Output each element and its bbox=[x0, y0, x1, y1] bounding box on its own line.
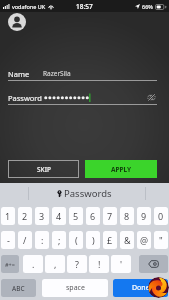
button[interactable]: ; bbox=[52, 231, 66, 249]
button[interactable]: 6 bbox=[86, 207, 100, 225]
staticText: 5 bbox=[73, 210, 79, 222]
button[interactable]: 1 bbox=[1, 207, 15, 225]
staticText: , bbox=[54, 258, 57, 270]
staticText: Name bbox=[8, 69, 30, 79]
staticText: vodafone UK bbox=[12, 3, 46, 10]
button[interactable]: ! bbox=[89, 255, 109, 273]
staticText: 66% bbox=[142, 3, 153, 10]
button[interactable]: 7 bbox=[103, 207, 117, 225]
staticText: SKIP bbox=[37, 165, 51, 174]
button[interactable]: & bbox=[120, 231, 134, 249]
staticText: Done bbox=[132, 283, 150, 293]
staticText: . bbox=[32, 258, 35, 270]
staticText: @ bbox=[140, 234, 149, 246]
staticText: APPLY bbox=[111, 165, 132, 174]
button[interactable]: 5 bbox=[69, 207, 83, 225]
button[interactable]: £ bbox=[103, 231, 117, 249]
staticText: RazerSila bbox=[43, 69, 71, 78]
staticText: 9 bbox=[141, 210, 147, 222]
button[interactable]: @ bbox=[137, 231, 151, 249]
staticText: ABC bbox=[12, 284, 25, 293]
button[interactable]: : bbox=[35, 231, 49, 249]
button[interactable]: Profile avatar bbox=[8, 13, 26, 31]
button[interactable]: APPLY bbox=[85, 160, 157, 178]
button[interactable]: ? bbox=[67, 255, 87, 273]
button[interactable]: Done bbox=[113, 279, 168, 297]
button[interactable]: Show password bbox=[146, 92, 157, 103]
staticText: - bbox=[7, 234, 10, 246]
staticText: ! bbox=[98, 258, 101, 270]
button[interactable]: Passwords bbox=[57, 187, 112, 200]
staticText: space bbox=[66, 283, 85, 293]
staticText: 6 bbox=[90, 210, 96, 222]
button[interactable]: - bbox=[1, 231, 15, 249]
staticText: : bbox=[41, 234, 44, 246]
button[interactable]: . bbox=[23, 255, 43, 273]
staticText: 4 bbox=[56, 210, 62, 222]
button[interactable]: " bbox=[154, 231, 168, 249]
button[interactable]: 2 bbox=[18, 207, 32, 225]
button[interactable]: SKIP bbox=[8, 160, 79, 178]
staticText: 0 bbox=[158, 210, 164, 222]
button[interactable]: 0 bbox=[154, 207, 168, 225]
staticText: 2 bbox=[22, 210, 28, 222]
button[interactable]: 4 bbox=[52, 207, 66, 225]
button[interactable]: / bbox=[18, 231, 32, 249]
staticText: " bbox=[159, 234, 163, 246]
staticText: ' bbox=[120, 258, 123, 270]
staticText: £ bbox=[107, 234, 113, 246]
button[interactable]: #+= bbox=[1, 255, 19, 273]
staticText: / bbox=[23, 234, 27, 246]
staticText: 18:57 bbox=[76, 2, 93, 11]
button[interactable]: ( bbox=[69, 231, 83, 249]
button[interactable]: space bbox=[42, 279, 108, 297]
button[interactable]: 3 bbox=[35, 207, 49, 225]
staticText: ? bbox=[75, 258, 79, 270]
button[interactable]: ) bbox=[86, 231, 100, 249]
button[interactable]: Backspace bbox=[139, 255, 168, 273]
staticText: Passwords bbox=[64, 187, 112, 200]
staticText: 3 bbox=[39, 210, 45, 222]
button[interactable]: , bbox=[45, 255, 65, 273]
button[interactable]: ABC bbox=[1, 279, 36, 297]
staticText: 7 bbox=[107, 210, 113, 222]
button[interactable]: Browser bbox=[148, 277, 169, 298]
staticText: ) bbox=[92, 234, 95, 246]
staticText: 1 bbox=[5, 210, 11, 222]
staticText: #+= bbox=[5, 261, 15, 268]
staticText: 8 bbox=[124, 210, 130, 222]
button[interactable]: 8 bbox=[120, 207, 134, 225]
staticText: Password bbox=[8, 93, 42, 103]
staticText: ( bbox=[75, 234, 78, 246]
button[interactable]: 9 bbox=[137, 207, 151, 225]
button[interactable]: ' bbox=[111, 255, 131, 273]
staticText: ; bbox=[58, 234, 61, 246]
staticText: & bbox=[124, 234, 131, 246]
